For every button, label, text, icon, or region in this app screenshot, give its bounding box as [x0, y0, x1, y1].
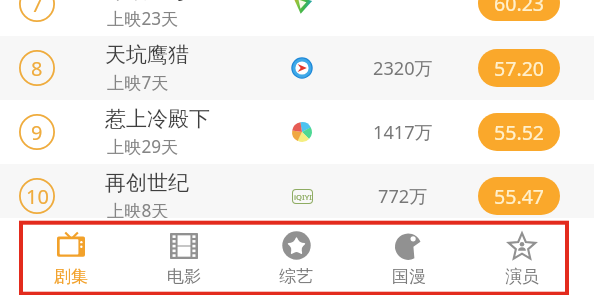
button[interactable]: Series: [17, 218, 125, 295]
staticText: 7: [31, 0, 43, 18]
staticText: 斗破苍穹: [105, 0, 189, 4]
button[interactable]: Movies: [130, 218, 238, 295]
staticText: 上映8天: [107, 199, 169, 222]
staticText: 57.20: [494, 55, 545, 82]
staticText: 再创世纪: [105, 170, 189, 196]
staticText: 演员: [505, 266, 539, 287]
staticText: 天坑鹰猎: [105, 42, 189, 68]
staticText: 60.23: [494, 0, 545, 17]
staticText: 9: [31, 119, 43, 146]
button[interactable]: 7: [0, 0, 594, 8]
button[interactable]: Variety: [242, 218, 350, 295]
staticText: 2320万: [373, 56, 433, 81]
staticText: 55.47: [494, 183, 545, 210]
staticText: 国漫: [392, 266, 426, 287]
staticText: 电影: [167, 266, 201, 287]
staticText: 剧集: [54, 266, 88, 287]
button[interactable]: 9: [0, 100, 594, 164]
staticText: 上映23天: [107, 7, 179, 30]
staticText: 上映7天: [107, 71, 169, 94]
button[interactable]: Actors: [468, 218, 576, 295]
staticText: 10: [26, 183, 49, 210]
staticText: 772万: [378, 184, 428, 209]
staticText: iQIYI: [294, 192, 312, 202]
staticText: 上映29天: [107, 135, 179, 158]
staticText: 综艺: [279, 266, 313, 287]
staticText: 惹上冷殿下: [105, 106, 210, 132]
staticText: 8: [31, 55, 43, 82]
staticText: 55.52: [494, 119, 545, 146]
button[interactable]: Anime: [355, 218, 463, 295]
button[interactable]: 10: [0, 164, 594, 228]
button[interactable]: 8: [0, 36, 594, 100]
staticText: 1417万: [373, 120, 433, 145]
